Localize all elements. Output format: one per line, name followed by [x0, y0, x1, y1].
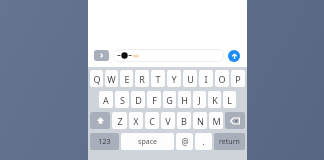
- button[interactable]: O: [215, 70, 229, 87]
- staticText: I: [204, 73, 208, 85]
- staticText: 123: [98, 137, 111, 147]
- button[interactable]: Shift: [90, 112, 110, 129]
- staticText: Z: [117, 115, 123, 127]
- button[interactable]: @: [176, 133, 193, 150]
- button[interactable]: return: [214, 133, 245, 150]
- button[interactable]: Z: [112, 112, 127, 129]
- staticText: .: [202, 136, 205, 147]
- button[interactable]: G: [163, 91, 176, 108]
- button[interactable]: F: [147, 91, 161, 108]
- button[interactable]: T: [151, 70, 165, 87]
- button[interactable]: H: [178, 91, 191, 108]
- button[interactable]: Show apps: [94, 50, 109, 61]
- button[interactable]: S: [115, 91, 129, 108]
- staticText: O: [218, 73, 226, 85]
- button[interactable]: X: [129, 112, 143, 129]
- staticText: G: [166, 94, 173, 106]
- button[interactable]: L: [223, 91, 236, 108]
- button[interactable]: E: [120, 70, 133, 87]
- button[interactable]: A: [99, 91, 113, 108]
- button[interactable]: K: [208, 91, 221, 108]
- button[interactable]: J: [193, 91, 206, 108]
- staticText: J: [198, 94, 201, 106]
- staticText: X: [133, 115, 139, 127]
- staticText: B: [181, 115, 187, 127]
- staticText: R: [139, 73, 145, 85]
- button[interactable]: .: [195, 133, 212, 150]
- button[interactable]: W: [105, 70, 118, 87]
- staticText: V: [165, 115, 171, 127]
- button[interactable]: M: [209, 112, 223, 129]
- button[interactable]: I: [199, 70, 213, 87]
- button[interactable]: B: [177, 112, 191, 129]
- button[interactable]: U: [183, 70, 197, 87]
- staticText: A: [103, 94, 109, 106]
- button[interactable]: R: [135, 70, 149, 87]
- button[interactable]: Send: [228, 50, 240, 62]
- button[interactable]: [113, 49, 224, 62]
- button[interactable]: V: [161, 112, 175, 129]
- staticText: Q: [93, 73, 101, 85]
- button[interactable]: Q: [90, 70, 103, 87]
- staticText: T: [155, 73, 161, 85]
- button[interactable]: C: [145, 112, 159, 129]
- staticText: return: [219, 137, 240, 147]
- staticText: M: [212, 115, 221, 127]
- staticText: space: [138, 137, 157, 147]
- staticText: K: [212, 94, 218, 106]
- button[interactable]: D: [131, 91, 145, 108]
- button[interactable]: Backspace: [225, 112, 245, 129]
- staticText: S: [120, 94, 125, 106]
- staticText: L: [227, 94, 232, 106]
- staticText: E: [124, 73, 130, 85]
- staticText: D: [135, 94, 142, 106]
- button[interactable]: N: [193, 112, 207, 129]
- staticText: F: [152, 94, 157, 106]
- staticText: N: [197, 115, 204, 127]
- staticText: P: [235, 73, 241, 85]
- button[interactable]: P: [231, 70, 245, 87]
- staticText: Y: [171, 73, 177, 85]
- staticText: H: [181, 94, 188, 106]
- button[interactable]: 123: [90, 133, 119, 150]
- staticText: W: [107, 73, 116, 85]
- button[interactable]: space: [121, 133, 174, 150]
- staticText: @: [181, 136, 189, 147]
- staticText: U: [187, 73, 194, 85]
- staticText: C: [149, 115, 155, 127]
- button[interactable]: Y: [167, 70, 181, 87]
